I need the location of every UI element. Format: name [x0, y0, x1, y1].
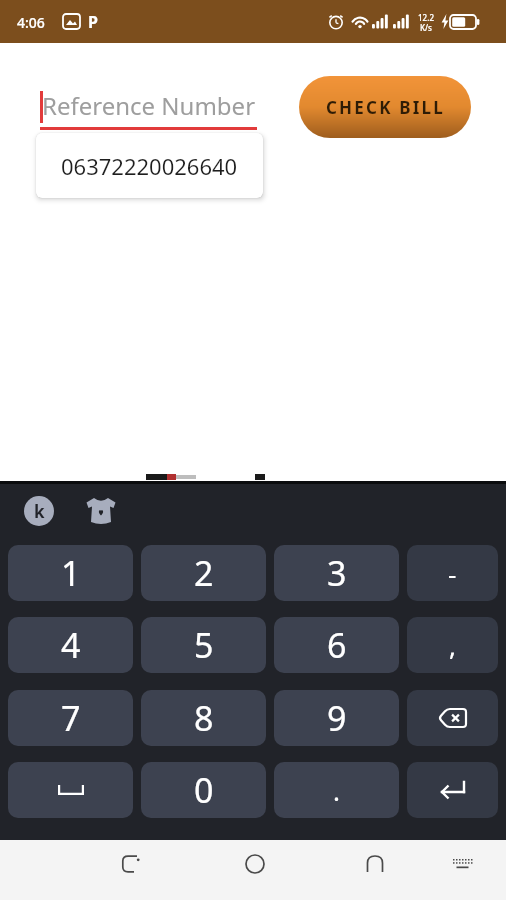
- button[interactable]: [452, 858, 473, 871]
- button[interactable]: 0: [141, 762, 266, 818]
- staticText: k: [34, 500, 45, 523]
- staticText: 5: [194, 622, 214, 668]
- staticText: -: [448, 556, 457, 591]
- button[interactable]: [407, 690, 498, 746]
- staticText: Reference Number: [42, 89, 256, 122]
- staticText: 8: [194, 695, 214, 741]
- staticText: P: [88, 11, 98, 33]
- staticText: 4: [61, 622, 81, 668]
- button[interactable]: ,: [407, 617, 498, 673]
- staticText: 06372220026640: [61, 151, 238, 181]
- button[interactable]: .: [274, 762, 399, 818]
- staticText: 1: [61, 550, 81, 596]
- button[interactable]: 9: [274, 690, 399, 746]
- button[interactable]: 1: [8, 545, 133, 601]
- staticText: ,: [449, 628, 456, 663]
- staticText: 4:06: [17, 13, 45, 32]
- staticText: 0: [194, 767, 214, 813]
- button[interactable]: -: [407, 545, 498, 601]
- staticText: 2: [194, 550, 214, 596]
- staticText: 3: [327, 550, 347, 596]
- button[interactable]: [8, 762, 133, 818]
- staticText: 12.2 K/s: [418, 12, 434, 33]
- button[interactable]: k: [24, 496, 54, 526]
- button[interactable]: [85, 497, 117, 525]
- staticText: .: [333, 773, 340, 808]
- button[interactable]: 7: [8, 690, 133, 746]
- button[interactable]: 2: [141, 545, 266, 601]
- button[interactable]: 3: [274, 545, 399, 601]
- button[interactable]: [364, 853, 386, 875]
- staticText: CHECK BILL: [326, 96, 445, 119]
- button[interactable]: CHECK BILL: [299, 76, 471, 138]
- button[interactable]: 6: [274, 617, 399, 673]
- button[interactable]: 8: [141, 690, 266, 746]
- button[interactable]: [120, 853, 142, 875]
- button[interactable]: [244, 853, 266, 875]
- button[interactable]: 5: [141, 617, 266, 673]
- button[interactable]: 06372220026640: [36, 133, 263, 198]
- button[interactable]: [407, 762, 498, 818]
- staticText: 9: [327, 695, 347, 741]
- staticText: 7: [61, 695, 81, 741]
- staticText: 6: [327, 622, 347, 668]
- button[interactable]: 4: [8, 617, 133, 673]
